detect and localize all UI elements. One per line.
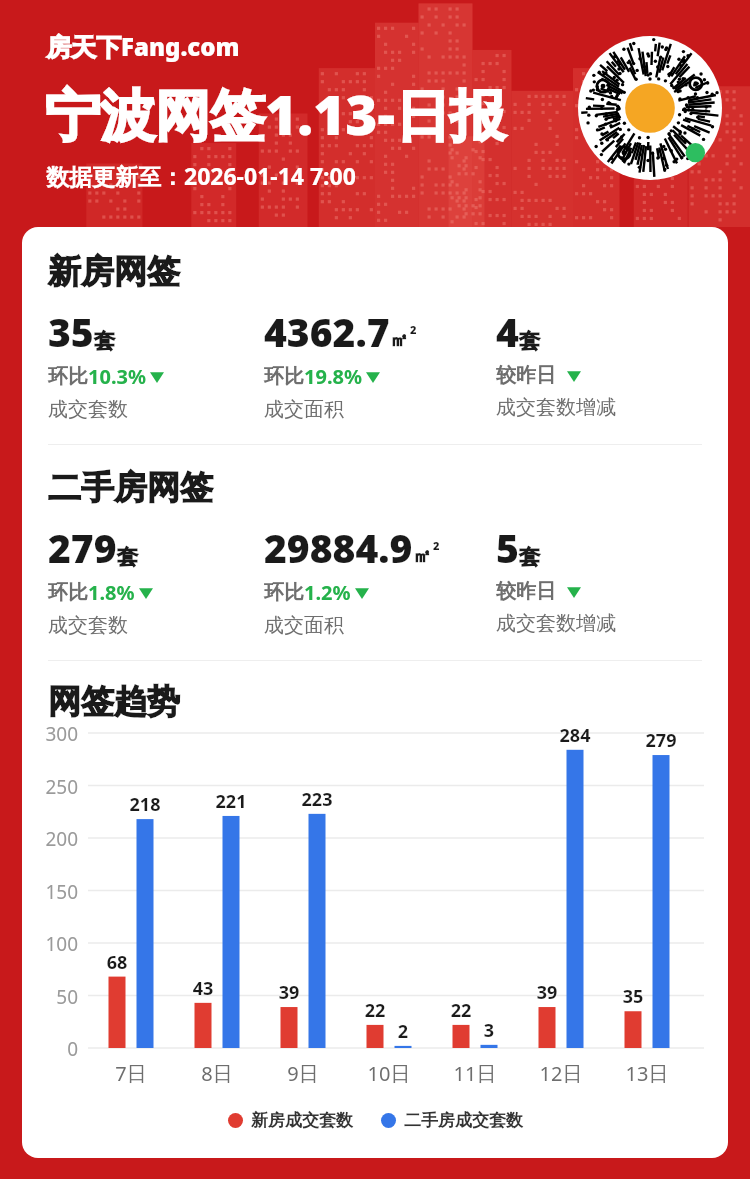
staticText: 13日 xyxy=(612,1060,682,1087)
staticText: 4362.7 xyxy=(264,305,390,358)
staticText: 11日 xyxy=(440,1060,510,1087)
staticText: 284 xyxy=(550,723,600,748)
staticText: 二手房成交套数 xyxy=(404,1110,523,1131)
staticText: 5 xyxy=(496,521,519,574)
staticText: 套 xyxy=(519,328,540,354)
staticText: 2 xyxy=(410,322,417,337)
staticText: 22 xyxy=(436,998,486,1023)
staticText: 环比 xyxy=(264,364,304,389)
button[interactable]: 4362.7 xyxy=(264,305,408,422)
staticText: 套 xyxy=(519,544,540,570)
staticText: 成交套数 xyxy=(48,613,128,638)
button[interactable]: 房天下 Fang.com xyxy=(46,30,240,63)
staticText: 环比 xyxy=(48,580,88,605)
staticText: 3 xyxy=(464,1018,514,1043)
staticText: 成交套数增减 xyxy=(496,395,616,420)
button[interactable]: 二手房成交套数 xyxy=(381,1110,523,1131)
button[interactable]: 279 xyxy=(48,521,154,638)
staticText: 环比 xyxy=(48,364,88,389)
staticText: 7日 xyxy=(96,1060,166,1087)
staticText: 成交套数 xyxy=(48,397,128,422)
staticText: 套 xyxy=(94,328,115,354)
staticText: 8日 xyxy=(182,1060,252,1087)
staticText: 35 xyxy=(48,305,94,358)
staticText: 35 xyxy=(608,984,658,1009)
staticText: 成交面积 xyxy=(264,613,344,638)
staticText: 房天下 xyxy=(46,32,121,63)
staticText: 9日 xyxy=(268,1060,338,1087)
staticText: 新房网签 xyxy=(48,251,180,293)
staticText: 0 xyxy=(30,1036,78,1062)
staticText: 宁波网签1.13-日报 xyxy=(45,76,506,151)
staticText: 200 xyxy=(30,826,78,852)
button[interactable]: 5 xyxy=(496,521,616,636)
staticText: 100 xyxy=(30,931,78,957)
staticText: 较昨日 xyxy=(496,363,556,388)
staticText: 环比 xyxy=(264,580,304,605)
staticText: 2 xyxy=(433,538,440,553)
staticText: 223 xyxy=(292,787,342,812)
staticText: Fang.com xyxy=(121,30,240,63)
staticText: ㎡ xyxy=(390,329,408,352)
staticText: 22 xyxy=(350,998,400,1023)
staticText: 数据更新至：2026-01-14 7:00 xyxy=(46,160,356,191)
staticText: 29884.9 xyxy=(264,521,413,574)
staticText: 43 xyxy=(178,976,228,1001)
button[interactable]: 小程序二维码 xyxy=(578,36,722,180)
staticText: 39 xyxy=(264,980,314,1005)
staticText: 10.3% xyxy=(88,363,146,390)
staticText: 新房成交套数 xyxy=(251,1110,353,1131)
staticText: ㎡ xyxy=(413,545,431,568)
button[interactable]: 35 xyxy=(48,305,165,422)
staticText: 19.8% xyxy=(304,363,362,390)
staticText: 2 xyxy=(378,1019,428,1044)
staticText: 12日 xyxy=(526,1060,596,1087)
staticText: 250 xyxy=(30,774,78,800)
staticText: 1.2% xyxy=(304,579,351,606)
staticText: 150 xyxy=(30,879,78,905)
staticText: 4 xyxy=(496,305,519,358)
staticText: 221 xyxy=(206,789,256,814)
button[interactable]: 4 xyxy=(496,305,616,420)
staticText: 68 xyxy=(92,950,142,975)
button[interactable]: 29884.9 xyxy=(264,521,431,638)
button[interactable]: 新房成交套数 xyxy=(228,1110,353,1131)
staticText: 279 xyxy=(48,521,117,574)
staticText: 1.8% xyxy=(88,579,135,606)
staticText: 二手房网签 xyxy=(48,467,213,509)
staticText: 网签趋势 xyxy=(48,681,180,723)
staticText: 218 xyxy=(120,792,170,817)
staticText: 成交套数增减 xyxy=(496,611,616,636)
staticText: 成交面积 xyxy=(264,397,344,422)
staticText: 279 xyxy=(636,728,686,753)
staticText: 10日 xyxy=(354,1060,424,1087)
staticText: 套 xyxy=(117,544,138,570)
staticText: 300 xyxy=(30,721,78,747)
staticText: 50 xyxy=(30,984,78,1010)
staticText: 39 xyxy=(522,980,572,1005)
staticText: 较昨日 xyxy=(496,579,556,604)
